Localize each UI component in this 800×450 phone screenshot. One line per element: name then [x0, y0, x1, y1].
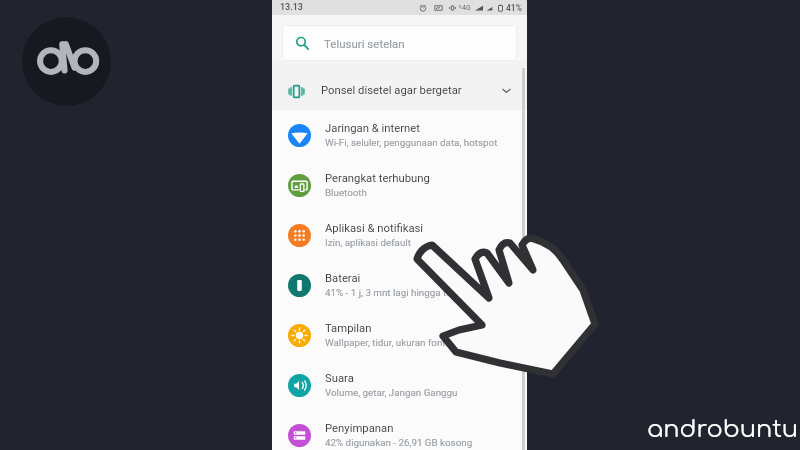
button[interactable]: Ponsel disetel agar bergetar	[272, 61, 527, 113]
button[interactable]: Penyimpanan	[272, 410, 527, 450]
other: Expand	[499, 83, 514, 98]
staticText: Suara	[325, 372, 354, 385]
button[interactable]: Jaringan & internet	[272, 110, 527, 160]
other: Search	[295, 36, 310, 51]
staticText: Bluetooth	[325, 187, 367, 198]
staticText: Penyimpanan	[325, 422, 394, 435]
staticText: Aplikasi & notifikasi	[325, 222, 424, 235]
staticText: 41%	[506, 3, 522, 13]
staticText: 4G	[462, 4, 471, 12]
staticText: Baterai	[325, 272, 361, 285]
staticText: Jaringan & internet	[325, 122, 420, 135]
staticText: Wallpaper, tidur, ukuran font	[325, 337, 446, 348]
staticText: Wi-Fi, seluler, penggunaan data, hotspot	[325, 137, 498, 148]
staticText: Izin, aplikasi default	[325, 237, 411, 248]
staticText: Tampilan	[325, 322, 372, 335]
staticText: Telusuri setelan	[324, 37, 405, 50]
staticText: 41% - 1 j, 3 mnt lagi hingga terisi penu…	[325, 287, 494, 298]
staticText: Volume, getar, Jangan Ganggu	[325, 387, 458, 398]
button[interactable]: Aplikasi & notifikasi	[272, 210, 527, 260]
staticText: androbuntu	[647, 416, 799, 443]
staticText: Ponsel disetel agar bergetar	[321, 84, 462, 97]
button[interactable]: Search	[282, 25, 517, 61]
staticText: 42% digunakan - 26,91 GB kosong	[325, 437, 473, 448]
button[interactable]: Tampilan	[272, 310, 527, 360]
button[interactable]: Baterai	[272, 260, 527, 310]
button[interactable]: Perangkat terhubung	[272, 160, 527, 210]
staticText: 13.13	[280, 2, 303, 13]
staticText: Perangkat terhubung	[325, 172, 430, 185]
button[interactable]: Suara	[272, 360, 527, 410]
